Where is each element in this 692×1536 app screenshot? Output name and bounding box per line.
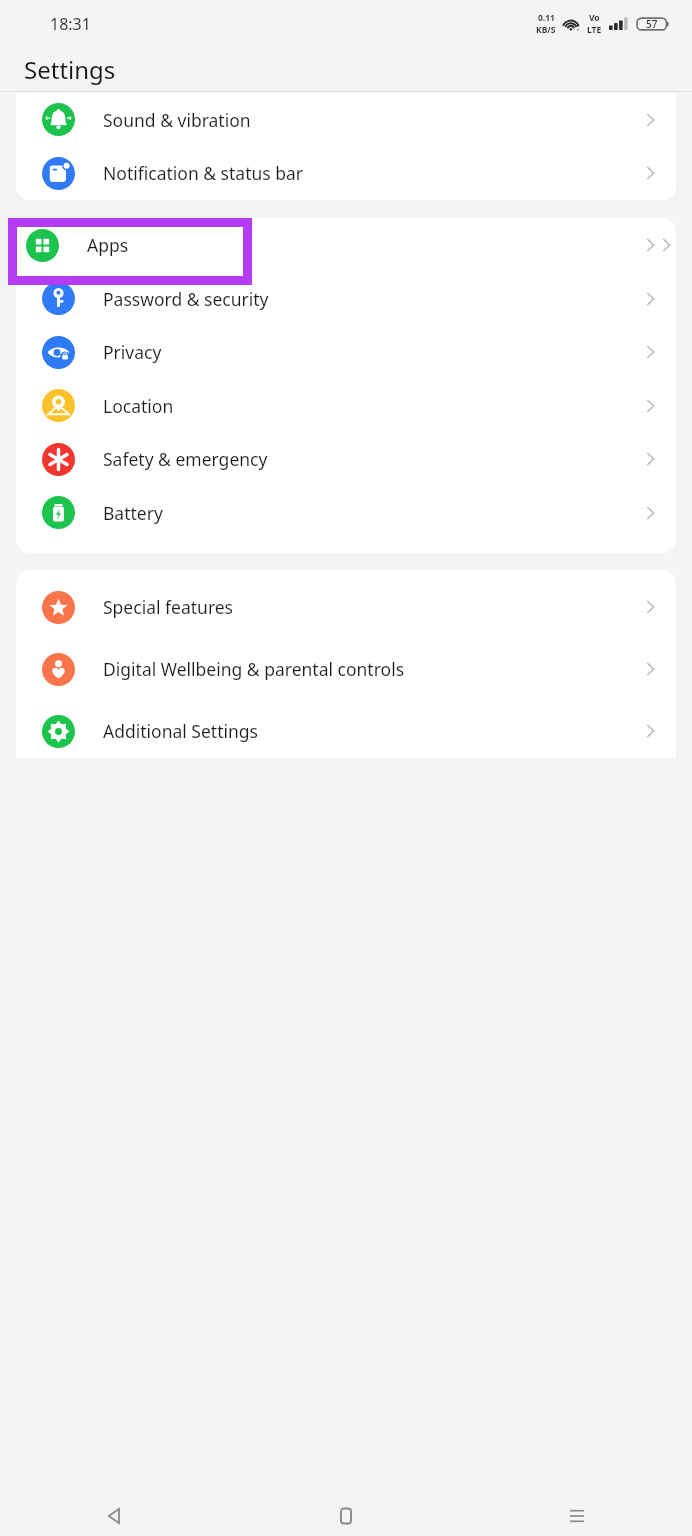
staticText: Battery	[103, 501, 632, 525]
staticText: Apps	[87, 233, 656, 257]
staticText: Additional Settings	[103, 719, 632, 743]
staticText: KB/S	[536, 24, 556, 36]
staticText: Vo	[589, 12, 600, 24]
button[interactable]: Apps	[0, 218, 692, 272]
staticText: Settings	[24, 53, 116, 86]
button[interactable]: Home	[230, 1496, 461, 1536]
button[interactable]: Apps	[16, 218, 676, 272]
button[interactable]: Location	[16, 379, 676, 432]
button[interactable]: Notification & status bar	[16, 146, 676, 200]
staticText: Apps	[103, 233, 632, 257]
button[interactable]: Recent apps	[461, 1496, 692, 1536]
button[interactable]: Back	[0, 1496, 230, 1536]
staticText: LTE	[587, 24, 602, 36]
staticText: Location	[103, 394, 632, 418]
button[interactable]: Special features	[16, 580, 676, 634]
button[interactable]: Battery	[16, 486, 676, 539]
button[interactable]: Safety & emergency	[16, 432, 676, 486]
staticText: 0.11	[538, 12, 555, 24]
staticText: 18:31	[50, 13, 91, 35]
button[interactable]: Password & security	[16, 272, 676, 325]
button[interactable]: Privacy	[16, 325, 676, 379]
staticText: 57	[646, 17, 658, 31]
staticText: Privacy	[103, 340, 632, 364]
staticText: Sound & vibration	[103, 108, 632, 132]
staticText: Password & security	[103, 287, 632, 311]
button[interactable]: Digital Wellbeing & parental controls	[16, 634, 676, 704]
staticText: Notification & status bar	[103, 161, 632, 185]
staticText: Safety & emergency	[103, 447, 632, 471]
staticText: Digital Wellbeing & parental controls	[103, 657, 632, 681]
button[interactable]: Additional Settings	[16, 704, 676, 758]
button[interactable]: Sound & vibration	[16, 93, 676, 146]
staticText: Special features	[103, 595, 632, 619]
